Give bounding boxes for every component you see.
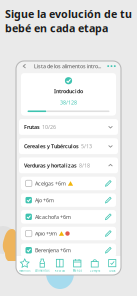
staticText: Recetas bbox=[55, 269, 65, 272]
button[interactable]: Listas bbox=[103, 257, 121, 274]
staticText: Menús bbox=[73, 269, 82, 272]
staticText: 5/13 bbox=[79, 143, 92, 150]
staticText: Introducido bbox=[54, 87, 83, 95]
button[interactable]: Acelgas +6m bbox=[16, 177, 121, 193]
staticText: Apio +9m bbox=[35, 230, 57, 237]
staticText: Compra bbox=[90, 269, 100, 272]
button[interactable]: Frutas bbox=[16, 119, 121, 138]
button[interactable]: Alimentos bbox=[33, 257, 51, 274]
staticText: Listas bbox=[109, 269, 115, 272]
staticText: Acelgas +6m bbox=[35, 180, 66, 187]
button[interactable]: Berro +6m bbox=[16, 260, 121, 277]
button[interactable]: Alcachofa +6m bbox=[16, 210, 121, 227]
button[interactable]: Compra bbox=[86, 257, 103, 274]
staticText: Sigue la evolución de tu bebé en cada et… bbox=[5, 7, 132, 35]
staticText: Alcachofa +6m bbox=[35, 213, 71, 220]
staticText: 38/128 bbox=[60, 99, 77, 106]
button[interactable]: Favoritos bbox=[16, 257, 33, 274]
staticText: Lista de los alimentos intro... bbox=[34, 63, 101, 70]
button[interactable]: Back bbox=[19, 60, 30, 73]
staticText: Cereales y Tubérculos bbox=[24, 143, 79, 150]
button[interactable]: More options bbox=[105, 60, 118, 73]
staticText: Berro +6m bbox=[35, 263, 60, 270]
button[interactable]: Verduras y hortalizas bbox=[16, 157, 121, 177]
button[interactable]: Recetas bbox=[51, 257, 68, 274]
staticText: Berenjena +6m bbox=[35, 247, 71, 254]
button[interactable]: Cereales y Tubérculos bbox=[16, 138, 121, 157]
staticText: 10/26 bbox=[40, 123, 56, 130]
button[interactable]: Apio +9m bbox=[16, 227, 121, 243]
button[interactable]: Ajo +6m bbox=[16, 193, 121, 210]
staticText: 8/18 bbox=[77, 162, 90, 169]
button[interactable]: Menús bbox=[68, 257, 86, 274]
button[interactable]: Berenjena +6m bbox=[16, 243, 121, 260]
staticText: Alimentos bbox=[35, 269, 49, 272]
staticText: Favoritos bbox=[19, 269, 30, 272]
staticText: Ajo +6m bbox=[35, 197, 54, 204]
staticText: Frutas bbox=[24, 123, 40, 130]
staticText: Verduras y hortalizas bbox=[24, 162, 77, 169]
